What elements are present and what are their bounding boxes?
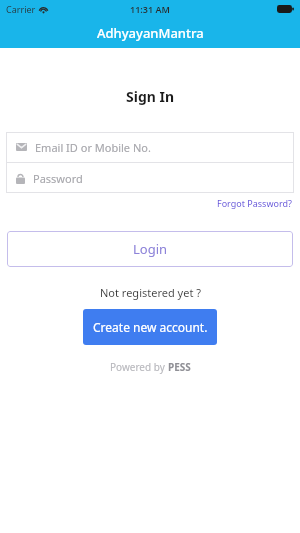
- staticText: Email ID or Mobile No.: [35, 140, 151, 155]
- button[interactable]: Login: [7, 231, 293, 267]
- staticText: Not registered yet ?: [100, 285, 201, 300]
- button[interactable]: Create new account.: [83, 309, 217, 345]
- staticText: Create new account.: [93, 319, 208, 335]
- button[interactable]: Forgot Password?: [216, 196, 293, 210]
- staticText: Forgot Password?: [217, 197, 292, 209]
- button[interactable]: Password: [6, 163, 294, 193]
- staticText: Password: [33, 171, 83, 186]
- staticText: Powered by: [110, 360, 168, 374]
- other: Wi-Fi signal: [39, 5, 48, 13]
- staticText: Sign In: [126, 87, 175, 106]
- button[interactable]: Email ID or Mobile No.: [6, 132, 294, 162]
- staticText: Carrier: [6, 3, 36, 15]
- other: Battery full: [277, 5, 294, 13]
- staticText: PESS: [168, 360, 191, 374]
- staticText: 11:31 AM: [130, 3, 170, 15]
- staticText: AdhyayanMantra: [97, 24, 204, 42]
- staticText: Login: [133, 240, 168, 258]
